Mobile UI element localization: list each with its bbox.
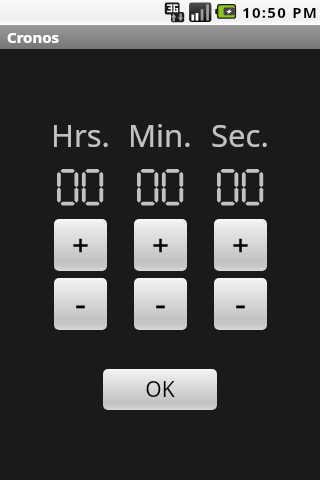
button[interactable]: Increase — [214, 219, 267, 271]
button[interactable]: Decrease — [214, 278, 267, 330]
staticText: Sec. — [211, 114, 269, 156]
staticText: Min. — [128, 114, 192, 156]
button[interactable]: Decrease — [134, 278, 187, 330]
staticText: Hrs. — [51, 114, 110, 156]
button[interactable]: Increase — [134, 219, 187, 271]
button[interactable]: Decrease — [54, 278, 107, 330]
staticText: 10:50 PM — [242, 2, 319, 22]
button[interactable]: OK — [103, 369, 217, 410]
button[interactable]: Increase — [54, 219, 107, 271]
staticText: Cronos — [7, 27, 60, 47]
staticText: OK — [145, 375, 175, 404]
